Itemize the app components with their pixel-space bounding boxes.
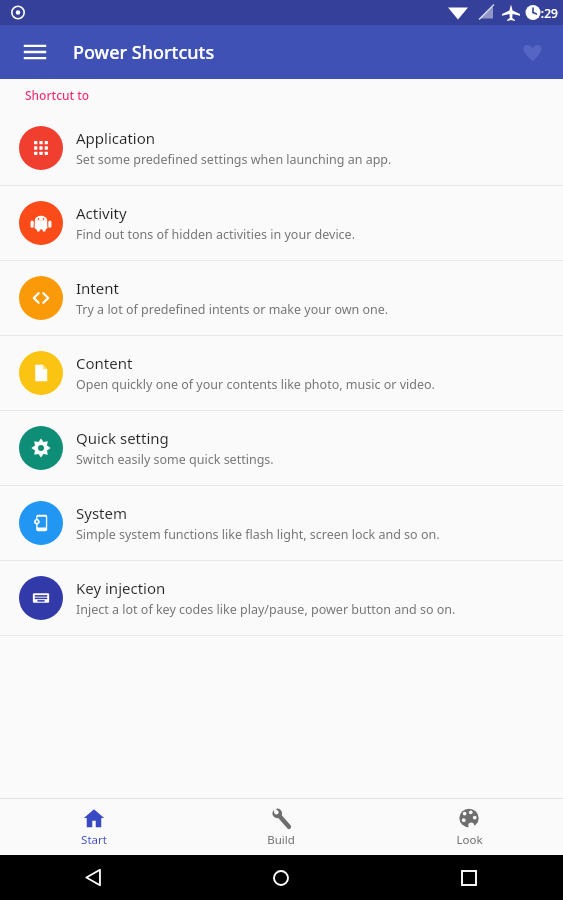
staticText: 1:29 bbox=[534, 5, 558, 21]
button[interactable]: Intent bbox=[0, 261, 563, 335]
button[interactable]: Open navigation menu bbox=[14, 31, 56, 73]
button[interactable]: Home bbox=[187, 855, 375, 900]
button[interactable]: Back bbox=[0, 855, 187, 900]
staticText: Activity bbox=[76, 203, 127, 223]
button[interactable]: Favorite bbox=[511, 31, 553, 73]
staticText: Set some predefined settings when launch… bbox=[76, 151, 392, 168]
staticText: Simple system functions like flash light… bbox=[76, 526, 440, 543]
staticText: Key injection bbox=[76, 578, 166, 598]
button[interactable]: System bbox=[0, 486, 563, 560]
staticText: Quick setting bbox=[76, 428, 169, 448]
staticText: Start bbox=[81, 832, 107, 848]
button[interactable]: Key injection bbox=[0, 561, 563, 635]
button[interactable]: Content bbox=[0, 336, 563, 410]
button[interactable]: Build bbox=[187, 799, 375, 855]
button[interactable]: Quick setting bbox=[0, 411, 563, 485]
staticText: Switch easily some quick settings. bbox=[76, 451, 274, 468]
staticText: Inject a lot of key codes like play/paus… bbox=[76, 601, 456, 618]
staticText: Shortcut to bbox=[25, 87, 90, 103]
button[interactable]: Activity bbox=[0, 186, 563, 260]
button[interactable]: Recent apps bbox=[375, 855, 563, 900]
staticText: Content bbox=[76, 353, 133, 373]
staticText: Open quickly one of your contents like p… bbox=[76, 376, 435, 393]
staticText: Intent bbox=[76, 278, 119, 298]
staticText: System bbox=[76, 503, 127, 523]
staticText: Power Shortcuts bbox=[73, 40, 215, 65]
staticText: Application bbox=[76, 128, 156, 148]
staticText: Try a lot of predefined intents or make … bbox=[76, 301, 389, 318]
staticText: Look bbox=[456, 832, 483, 848]
staticText: Build bbox=[267, 832, 295, 848]
button[interactable]: Look bbox=[375, 799, 563, 855]
button[interactable]: Start bbox=[0, 799, 187, 855]
button[interactable]: Application bbox=[0, 111, 563, 185]
staticText: Find out tons of hidden activities in yo… bbox=[76, 226, 356, 243]
